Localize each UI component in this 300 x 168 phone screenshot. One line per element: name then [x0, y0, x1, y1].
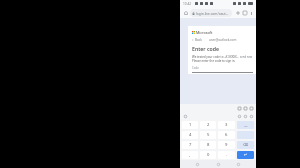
- button[interactable]: Home: [215, 161, 222, 168]
- staticText: 4: [189, 132, 192, 138]
- button[interactable]: Translate: [242, 113, 248, 119]
- button[interactable]: ,: [182, 151, 198, 159]
- button[interactable]: Keyboard settings: [182, 113, 188, 119]
- button[interactable]: 3: [218, 121, 235, 129]
- button[interactable]: 0: [200, 151, 216, 159]
- button[interactable]: Home: [182, 9, 189, 16]
- staticText: Microsoft: [196, 30, 213, 35]
- button[interactable]: Back: [235, 161, 242, 168]
- button[interactable]: Clipboard: [236, 105, 242, 111]
- staticText: 3: [225, 122, 228, 128]
- button[interactable]: Sticker: [236, 113, 242, 119]
- staticText: ↵: [244, 153, 248, 157]
- button[interactable]: Tabs: [241, 9, 248, 16]
- button[interactable]: Backspace: [237, 141, 254, 149]
- staticText: 2: [207, 122, 210, 128]
- button[interactable]: 7: [182, 141, 198, 149]
- button[interactable]: 5: [200, 131, 216, 139]
- button[interactable]: login.live.com/oauth20: [190, 9, 232, 17]
- staticText: —: [244, 123, 248, 128]
- staticText: Enter code: [192, 45, 220, 52]
- button[interactable]: 9: [218, 141, 235, 149]
- button[interactable]: Search: [248, 113, 254, 119]
- button[interactable]: 4: [182, 131, 198, 139]
- button[interactable]: 6: [218, 131, 235, 139]
- staticText: 6: [225, 132, 228, 138]
- button[interactable]: 8: [200, 141, 216, 149]
- staticText: ,: [189, 152, 191, 158]
- button[interactable]: Enter: [237, 151, 254, 159]
- staticText: 5: [207, 132, 210, 138]
- staticText: user@outlook.com: [209, 38, 237, 42]
- staticText: ⌫: [243, 143, 249, 147]
- staticText: Please enter the code to sign in.: [192, 59, 236, 63]
- staticText: send new: [240, 55, 253, 59]
- button[interactable]: 2: [200, 121, 216, 129]
- staticText: .: [226, 152, 228, 158]
- staticText: Back: [195, 38, 202, 42]
- staticText: 7: [189, 142, 192, 148]
- staticText: We texted your code to +X XXXXXX89.: [192, 55, 240, 59]
- button[interactable]: Mic: [248, 105, 254, 111]
- button[interactable]: Screenshot: [242, 105, 248, 111]
- button[interactable]: Recents: [194, 161, 201, 168]
- staticText: login.live.com/oauth20: [196, 11, 230, 15]
- button[interactable]: Dash: [237, 121, 254, 129]
- staticText: Code: [192, 66, 199, 70]
- button[interactable]: New tab: [234, 9, 241, 16]
- button[interactable]: More options: [248, 10, 254, 16]
- staticText: 9: [225, 142, 228, 148]
- staticText: 10:42: [183, 2, 192, 6]
- button[interactable]: 1: [182, 121, 198, 129]
- staticText: 8: [207, 142, 210, 148]
- staticText: 0: [207, 152, 210, 158]
- staticText: 1: [189, 122, 192, 128]
